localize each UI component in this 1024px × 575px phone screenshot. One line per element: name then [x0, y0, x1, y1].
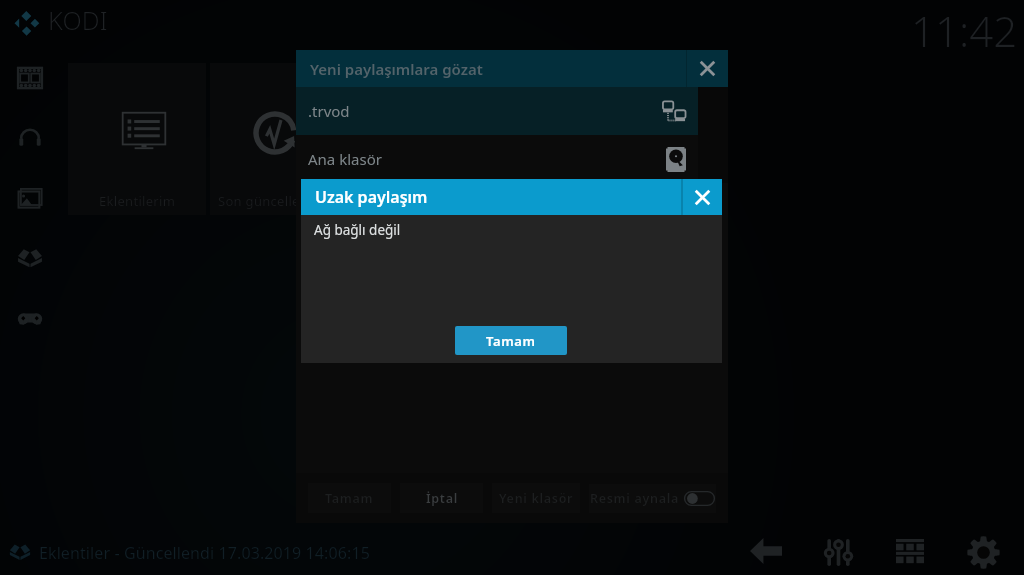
button[interactable]: Ana klasör: [296, 135, 698, 183]
button[interactable]: İptal: [400, 483, 483, 513]
button[interactable]: Yeni paylaşımlara gözat: [296, 50, 728, 87]
button[interactable]: Son güncellenenler: [210, 63, 348, 215]
button[interactable]: Menu item: [12, 168, 48, 228]
button[interactable]: Tamam: [308, 483, 391, 513]
button[interactable]: KODI: [14, 4, 108, 38]
staticText: Eklentiler - Güncellendi 17.03.2019 14:0…: [39, 542, 370, 564]
staticText: Son güncellenenler: [218, 192, 341, 210]
staticText: 11:42: [911, 2, 1018, 59]
staticText: Resmi aynala: [590, 490, 680, 507]
button[interactable]: Menu item: [12, 288, 48, 348]
staticText: Tamam: [325, 490, 374, 507]
staticText: İptal: [426, 490, 458, 507]
button[interactable]: Settings: [960, 532, 1006, 572]
staticText: Yeni klasör: [499, 490, 574, 507]
button[interactable]: Resmi aynala: [589, 484, 716, 513]
staticText: Yeni paylaşımlara gözat: [310, 59, 483, 79]
button[interactable]: Back: [744, 533, 788, 569]
staticText: Ağ bağlı değil: [314, 221, 401, 239]
staticText: Ana klasör: [308, 149, 382, 169]
staticText: Uzak paylaşım: [315, 186, 428, 208]
button[interactable]: Tamam: [455, 326, 567, 355]
button[interactable]: View layout: [886, 533, 934, 571]
button[interactable]: Sort options: [814, 533, 862, 571]
button[interactable]: Close: [683, 179, 722, 215]
button[interactable]: Menu item: [12, 108, 48, 168]
button[interactable]: Eklentilerim: [68, 63, 206, 215]
button[interactable]: .trvod: [296, 87, 698, 135]
button[interactable]: Yeni klasör: [492, 483, 580, 513]
staticText: Tamam: [486, 332, 536, 350]
staticText: .trvod: [308, 101, 350, 121]
staticText: Eklentilerim: [99, 192, 176, 210]
button[interactable]: Menu item: [12, 48, 48, 108]
button[interactable]: Menu item: [12, 228, 48, 288]
button[interactable]: Close: [687, 50, 728, 87]
staticText: KODI: [48, 3, 108, 37]
